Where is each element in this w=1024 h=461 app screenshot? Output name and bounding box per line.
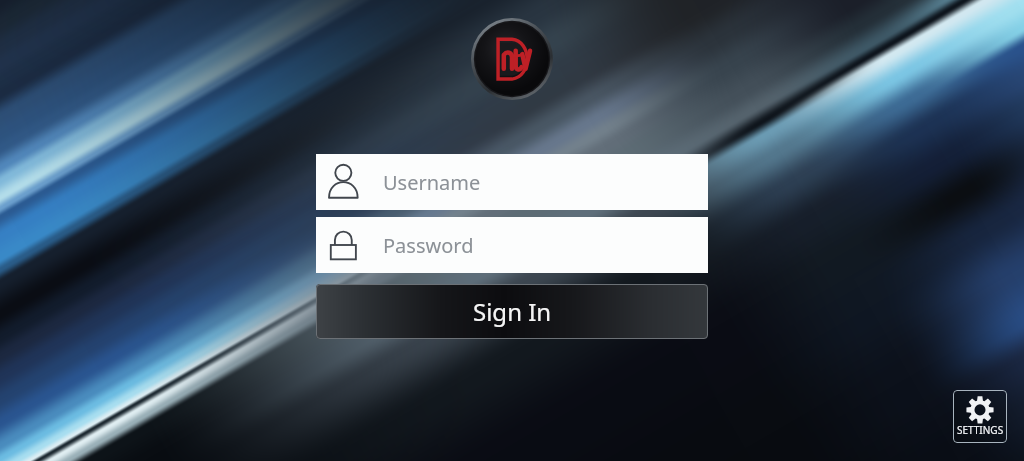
staticText: SETTINGS bbox=[957, 423, 1004, 437]
staticText: Password bbox=[383, 232, 474, 259]
staticText: Username bbox=[383, 169, 481, 196]
button[interactable]: Username bbox=[316, 154, 708, 210]
button[interactable]: Sign In bbox=[316, 284, 708, 339]
button[interactable]: Password bbox=[316, 217, 708, 273]
staticText: Sign In bbox=[473, 295, 552, 328]
button[interactable]: Settings bbox=[953, 390, 1007, 443]
